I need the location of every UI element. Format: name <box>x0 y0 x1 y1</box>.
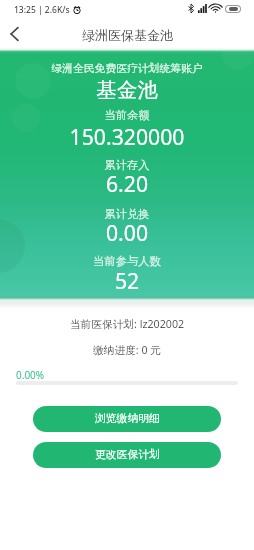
staticText: 累计兑换 <box>0 207 254 221</box>
staticText: 13:25 | 2.6K/s <box>14 4 70 16</box>
staticText: 0.00 <box>0 218 254 247</box>
button[interactable]: 更改医保计划 <box>33 442 221 468</box>
staticText: 150.320000 <box>0 122 254 151</box>
staticText: 累计存入 <box>0 158 254 172</box>
staticText: 更改医保计划 <box>95 448 160 462</box>
staticText: 0.00% <box>16 368 45 382</box>
staticText: 当前参与人数 <box>0 254 254 268</box>
staticText: 缴纳进度: 0 元 <box>0 343 254 358</box>
staticText: 浏览缴纳明细 <box>95 412 160 426</box>
staticText: 绿洲医保基金池 <box>82 27 173 43</box>
button[interactable]: 浏览缴纳明细 <box>33 406 221 432</box>
staticText: 绿洲全民免费医疗计划统筹账户 <box>0 62 254 76</box>
staticText: 6.20 <box>0 169 254 198</box>
staticText: 当前医保计划: lz202002 <box>0 317 254 332</box>
staticText: 基金池 <box>0 77 254 103</box>
button[interactable]: Back <box>1 21 27 47</box>
staticText: 52 <box>0 266 254 295</box>
staticText: 当前余额 <box>0 108 254 122</box>
